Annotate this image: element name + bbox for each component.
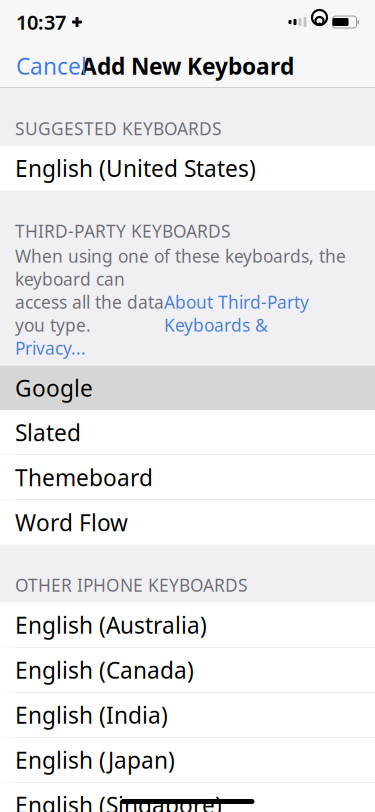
staticText: Privacy... xyxy=(15,337,86,360)
staticText: THIRD-PARTY KEYBOARDS xyxy=(15,219,231,242)
button[interactable]: Themeboard xyxy=(0,455,375,500)
button[interactable]: English (Canada) xyxy=(0,648,375,693)
staticText: OTHER IPHONE KEYBOARDS xyxy=(15,574,248,597)
button[interactable]: Cancel xyxy=(0,44,103,88)
staticText: access all the data you type. xyxy=(15,291,164,337)
staticText: SUGGESTED KEYBOARDS xyxy=(15,117,222,140)
button[interactable]: Word Flow xyxy=(0,500,375,545)
staticText: English (United States) xyxy=(15,153,256,183)
staticText: English (Singapore) xyxy=(15,790,222,812)
staticText: English (India) xyxy=(15,700,168,730)
staticText: 10:37 xyxy=(16,9,66,35)
staticText: English (Australia) xyxy=(15,610,207,640)
button[interactable]: English (Singapore) xyxy=(0,783,375,812)
staticText: When using one of these keyboards, the k… xyxy=(15,244,346,290)
button[interactable]: About Third-Party Keyboards & xyxy=(164,291,309,337)
staticText: English (Canada) xyxy=(15,655,194,685)
staticText: Themeboard xyxy=(15,462,153,492)
button[interactable]: English (United States) xyxy=(0,146,375,190)
staticText: Add New Keyboard xyxy=(81,51,294,81)
button[interactable]: Slated xyxy=(0,410,375,455)
staticText: About Third-Party Keyboards & xyxy=(164,291,309,337)
staticText: Slated xyxy=(15,417,81,447)
staticText: Word Flow xyxy=(15,507,128,537)
staticText: Cancel xyxy=(16,51,87,81)
button[interactable]: English (India) xyxy=(0,693,375,738)
button[interactable]: English (Japan) xyxy=(0,738,375,783)
staticText: English (Japan) xyxy=(15,745,175,775)
button[interactable]: Google xyxy=(0,366,375,410)
button[interactable]: English (Australia) xyxy=(0,603,375,648)
staticText: Google xyxy=(15,373,93,403)
button[interactable]: Privacy... xyxy=(15,337,86,360)
